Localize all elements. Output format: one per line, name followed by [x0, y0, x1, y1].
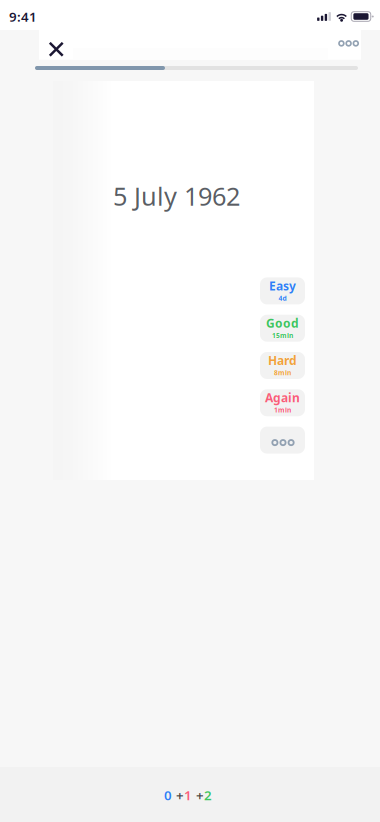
staticText: 8min	[274, 368, 291, 377]
staticText: +	[176, 786, 184, 804]
staticText: 5 July 1962	[113, 179, 240, 213]
staticText: 1min	[274, 406, 291, 414]
button[interactable]: Good	[260, 315, 305, 342]
staticText: 2	[204, 786, 212, 804]
button[interactable]: Hard	[260, 352, 305, 379]
button[interactable]: Easy	[260, 277, 305, 304]
staticText: 4d	[278, 294, 286, 303]
staticText: 9:41	[9, 8, 37, 25]
staticText: Again	[265, 390, 300, 406]
staticText: 1	[184, 786, 192, 804]
staticText: +	[196, 786, 204, 804]
button[interactable]: Close	[39, 31, 73, 59]
staticText: Hard	[268, 352, 297, 368]
staticText: Easy	[269, 278, 296, 294]
staticText: Good	[266, 315, 299, 331]
button[interactable]: More options	[328, 31, 361, 59]
button[interactable]: Again	[260, 389, 305, 416]
staticText: 0	[164, 786, 172, 804]
staticText: 15min	[272, 331, 293, 340]
button[interactable]: More answer options	[260, 427, 305, 454]
